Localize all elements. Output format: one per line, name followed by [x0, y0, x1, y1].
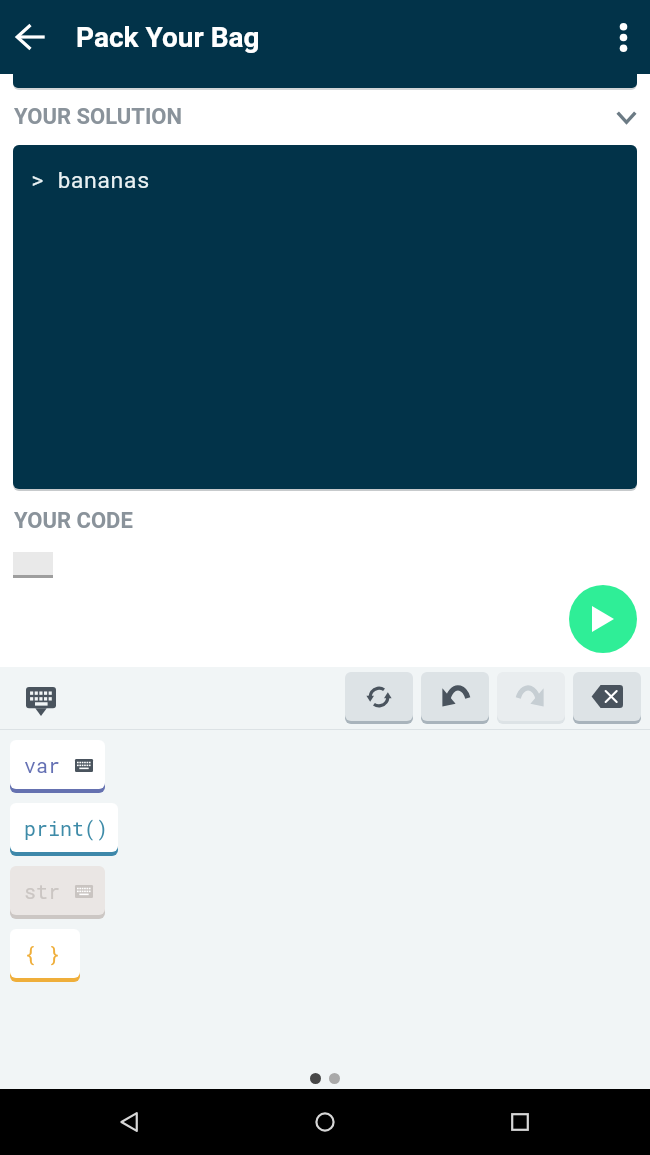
- staticText: print(): [24, 815, 109, 841]
- button[interactable]: Redo: [497, 672, 565, 724]
- button[interactable]: [13, 145, 637, 489]
- button[interactable]: Back: [0, 0, 60, 74]
- button[interactable]: print(): [10, 803, 118, 856]
- button[interactable]: Undo: [421, 672, 489, 724]
- button[interactable]: { }: [10, 929, 80, 982]
- button[interactable]: More options: [596, 0, 650, 74]
- button[interactable]: Reset: [345, 672, 413, 724]
- staticText: YOUR CODE: [14, 508, 133, 534]
- button[interactable]: Run: [569, 585, 637, 653]
- staticText: YOUR SOLUTION: [14, 104, 183, 130]
- staticText: { }: [24, 941, 61, 967]
- staticText: > bananas: [31, 165, 150, 194]
- button[interactable]: Delete: [573, 672, 641, 724]
- button[interactable]: Hide keyboard: [18, 678, 64, 724]
- staticText: var: [24, 752, 61, 778]
- button[interactable]: str: [10, 866, 105, 919]
- staticText: str: [24, 878, 61, 904]
- button[interactable]: Recents: [496, 1098, 544, 1146]
- button[interactable]: var: [10, 740, 105, 793]
- button[interactable]: YOUR SOLUTION: [0, 89, 650, 144]
- button[interactable]: Home: [301, 1098, 349, 1146]
- staticText: Pack Your Bag: [76, 21, 260, 54]
- button[interactable]: Back: [106, 1098, 154, 1146]
